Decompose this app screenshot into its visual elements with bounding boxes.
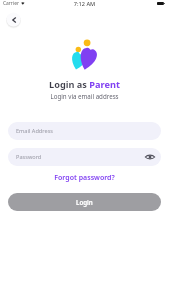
staticText: Login as Parent <box>0 78 169 91</box>
staticText: Email Address <box>16 127 53 135</box>
button[interactable]: Login <box>8 193 161 211</box>
button[interactable]: Email Address <box>8 122 161 140</box>
button[interactable]: Show password <box>144 151 156 163</box>
staticText: Carrier <box>3 0 19 7</box>
button[interactable]: Forgot password? <box>0 173 169 183</box>
staticText: Login <box>76 198 93 206</box>
staticText: Password <box>16 153 42 161</box>
button[interactable]: Back <box>6 12 21 27</box>
staticText: Login via email address <box>0 92 169 100</box>
staticText: 7:12 AM <box>0 0 169 8</box>
button[interactable]: Password <box>8 148 161 166</box>
